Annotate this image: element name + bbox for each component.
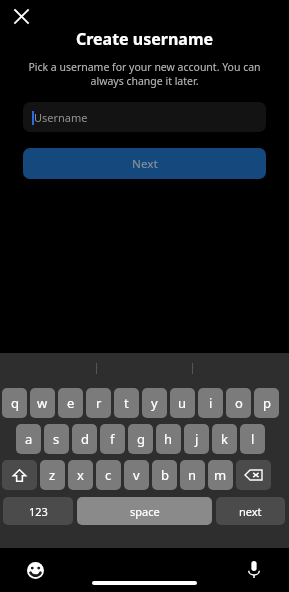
button[interactable]: i xyxy=(198,388,223,418)
staticText: 123 xyxy=(29,504,48,519)
button[interactable]: Username xyxy=(23,102,266,132)
staticText: l xyxy=(251,430,255,448)
staticText: c xyxy=(105,466,112,484)
staticText: w xyxy=(37,394,48,412)
button[interactable]: k xyxy=(212,424,237,454)
staticText: h xyxy=(164,430,173,448)
staticText: m xyxy=(214,466,227,484)
staticText: e xyxy=(67,394,75,412)
button[interactable]: 123 xyxy=(3,497,73,525)
button[interactable]: x xyxy=(68,460,93,490)
button[interactable]: h xyxy=(156,424,181,454)
button[interactable]: next xyxy=(216,497,285,525)
staticText: i xyxy=(209,394,213,412)
button[interactable]: space xyxy=(77,497,212,525)
button[interactable]: g xyxy=(128,424,153,454)
staticText: k xyxy=(221,430,228,448)
button[interactable]: n xyxy=(180,460,205,490)
button[interactable]: a xyxy=(16,424,41,454)
staticText: s xyxy=(53,430,60,448)
button[interactable]: b xyxy=(152,460,177,490)
button[interactable]: Voice input xyxy=(241,557,267,583)
button[interactable]: Emoji xyxy=(22,557,48,583)
staticText: p xyxy=(263,394,271,412)
button[interactable]: j xyxy=(184,424,209,454)
button[interactable]: e xyxy=(58,388,83,418)
button[interactable]: Close xyxy=(9,5,33,28)
button[interactable]: r xyxy=(86,388,111,418)
button[interactable]: q xyxy=(2,388,27,418)
button[interactable]: d xyxy=(72,424,97,454)
button[interactable]: Next xyxy=(23,148,266,179)
button[interactable]: t xyxy=(114,388,139,418)
button[interactable]: Backspace xyxy=(236,460,271,490)
staticText: j xyxy=(195,430,199,448)
staticText: t xyxy=(124,394,129,412)
staticText: space xyxy=(130,504,160,519)
staticText: b xyxy=(161,466,169,484)
staticText: u xyxy=(178,394,187,412)
staticText: d xyxy=(81,430,89,448)
button[interactable]: y xyxy=(142,388,167,418)
staticText: Next xyxy=(132,156,158,172)
staticText: q xyxy=(11,394,19,412)
staticText: a xyxy=(25,430,33,448)
button[interactable]: p xyxy=(254,388,279,418)
button[interactable]: u xyxy=(170,388,195,418)
staticText: z xyxy=(49,466,56,484)
staticText: r xyxy=(96,394,102,412)
button[interactable]: l xyxy=(240,424,265,454)
staticText: x xyxy=(77,466,84,484)
button[interactable]: Shift xyxy=(2,460,37,490)
button[interactable]: o xyxy=(226,388,251,418)
button[interactable]: w xyxy=(30,388,55,418)
button[interactable]: m xyxy=(208,460,233,490)
staticText: o xyxy=(235,394,243,412)
button[interactable]: s xyxy=(44,424,69,454)
button[interactable]: c xyxy=(96,460,121,490)
button[interactable]: v xyxy=(124,460,149,490)
staticText: v xyxy=(133,466,140,484)
staticText: f xyxy=(110,430,115,448)
button[interactable]: z xyxy=(40,460,65,490)
staticText: Pick a username for your new account. Yo… xyxy=(22,60,267,88)
staticText: next xyxy=(239,504,262,519)
staticText: Create username xyxy=(0,28,289,50)
staticText: g xyxy=(137,430,145,448)
button[interactable]: f xyxy=(100,424,125,454)
staticText: y xyxy=(151,394,158,412)
staticText: Username xyxy=(34,110,88,125)
staticText: n xyxy=(188,466,197,484)
